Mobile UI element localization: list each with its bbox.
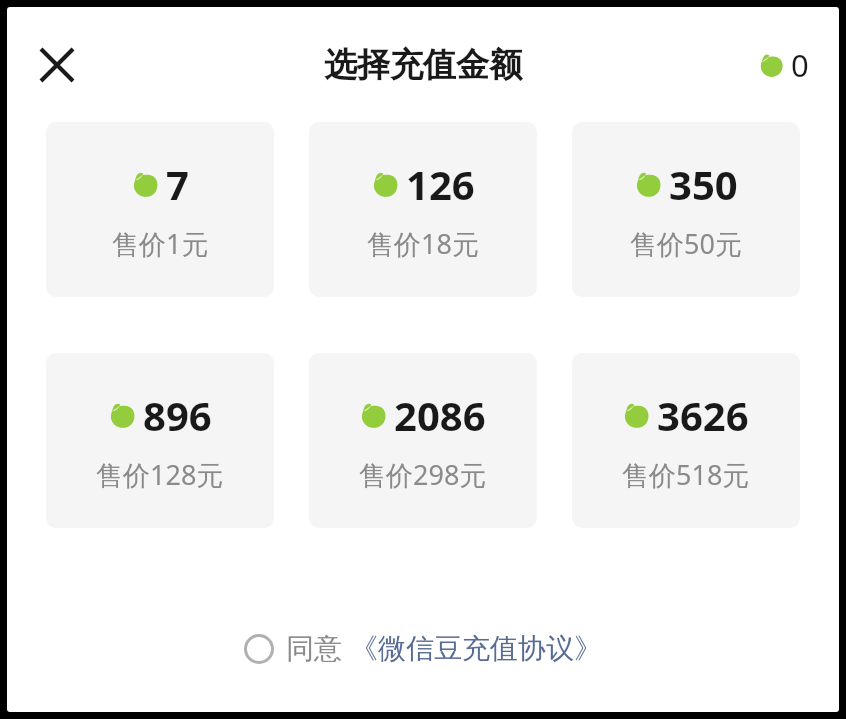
staticText: 售价1元 (112, 225, 209, 262)
button[interactable]: 3626 (572, 353, 800, 528)
button[interactable]: 350 (572, 122, 800, 297)
staticText: 售价50元 (630, 225, 742, 262)
button[interactable]: 126 (309, 122, 537, 297)
staticText: 126 (406, 157, 475, 211)
staticText: 350 (669, 157, 738, 211)
button[interactable]: Close (29, 37, 85, 93)
staticText: 售价298元 (359, 456, 487, 493)
staticText: 2086 (394, 388, 486, 442)
button[interactable]: 0 (759, 44, 809, 86)
staticText: 选择充值金额 (324, 44, 522, 86)
staticText: 3626 (657, 388, 749, 442)
staticText: 售价518元 (622, 456, 750, 493)
staticText: 7 (166, 157, 189, 211)
button[interactable]: 2086 (309, 353, 537, 528)
staticText: 896 (143, 388, 212, 442)
staticText: 售价128元 (96, 456, 224, 493)
button[interactable]: 896 (46, 353, 274, 528)
button[interactable]: 《微信豆充值协议》 (350, 631, 602, 666)
staticText: 0 (791, 44, 809, 86)
button[interactable]: 同意 (244, 631, 342, 666)
staticText: 同意 (286, 631, 342, 666)
staticText: 售价18元 (367, 225, 479, 262)
button[interactable]: 7 (46, 122, 274, 297)
